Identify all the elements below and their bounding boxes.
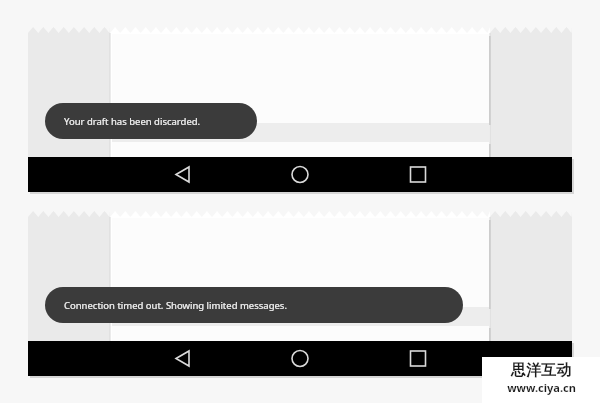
button[interactable]: Home: [276, 341, 324, 376]
button[interactable]: Recent apps: [394, 157, 442, 192]
staticText: Connection timed out. Showing limited me…: [64, 299, 287, 312]
staticText: www.ciya.cn: [507, 380, 576, 395]
staticText: 思洋互动: [511, 361, 571, 380]
button[interactable]: Back: [159, 157, 207, 192]
button[interactable]: Recent apps: [394, 341, 442, 376]
staticText: Your draft has been discarded.: [64, 115, 201, 128]
button[interactable]: Back: [159, 341, 207, 376]
button[interactable]: Connection timed out. Showing limited me…: [45, 287, 463, 323]
button[interactable]: Your draft has been discarded.: [45, 103, 257, 139]
button[interactable]: Home: [276, 157, 324, 192]
